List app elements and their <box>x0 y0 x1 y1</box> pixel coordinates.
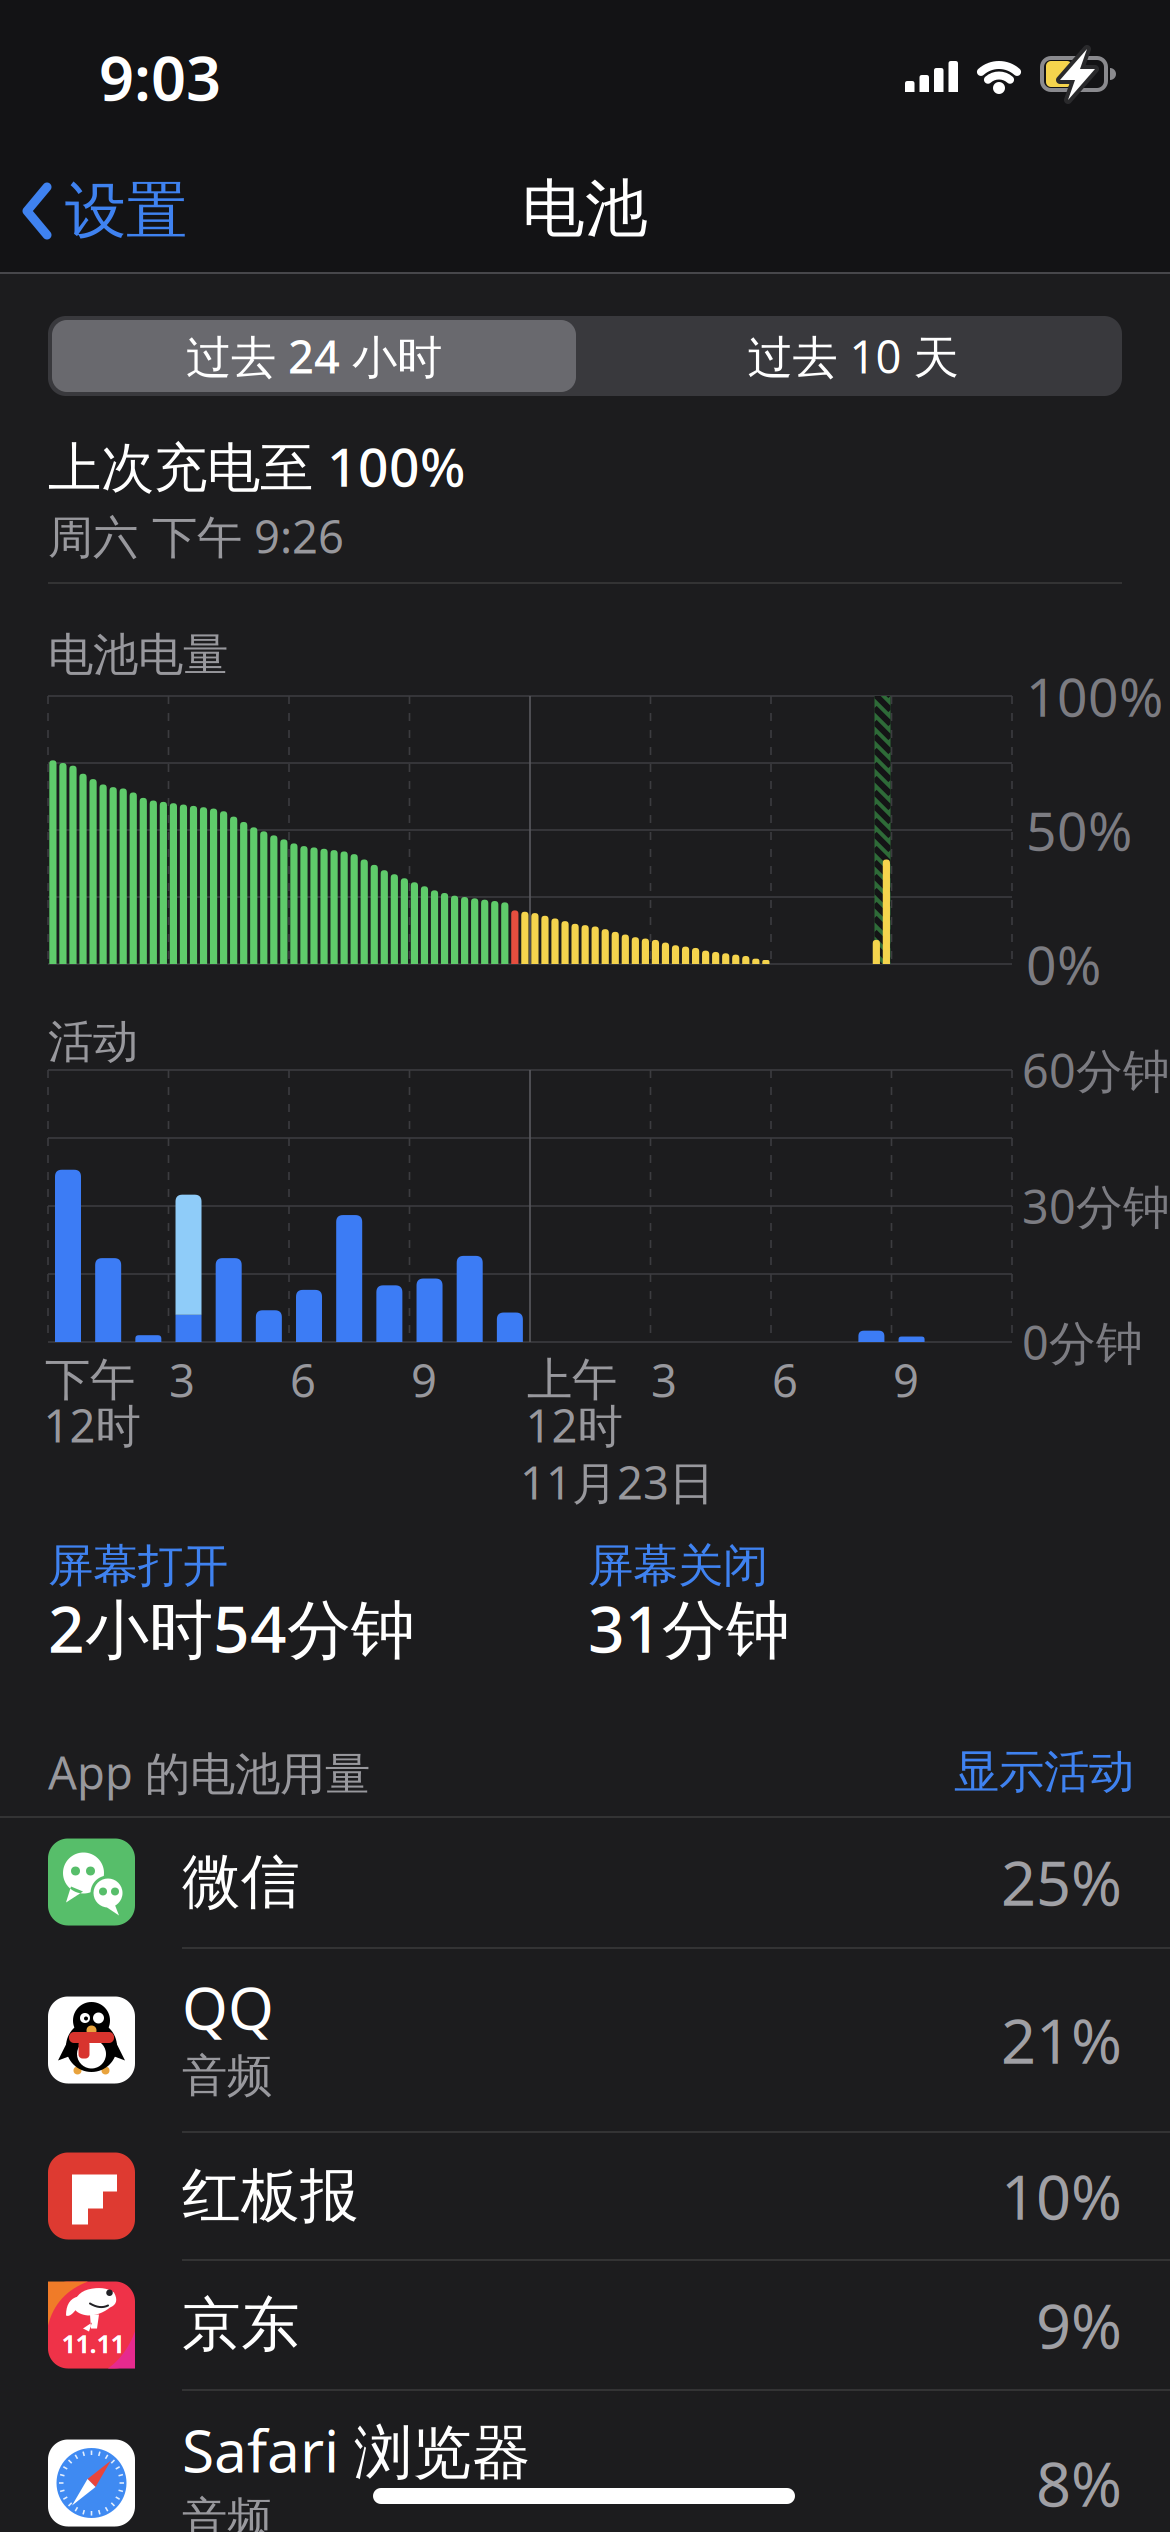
staticText: 上午 <box>527 1352 617 1408</box>
staticText: 3 <box>169 1350 195 1410</box>
staticText: 电池 <box>522 170 648 247</box>
staticText: 0% <box>1026 929 1101 999</box>
staticText: 音频 <box>182 2048 272 2104</box>
staticText: 11.11 <box>61 2327 124 2360</box>
staticText: 6 <box>290 1350 316 1410</box>
staticText: 过去 24 小时 <box>186 326 442 386</box>
staticText: 3 <box>651 1350 677 1410</box>
staticText: 100% <box>1026 661 1163 731</box>
staticText: 微信 <box>182 1846 300 1918</box>
staticText: App 的电池用量 <box>48 1742 370 1802</box>
staticText: 下午 <box>45 1352 135 1408</box>
button[interactable]: 微信 <box>0 1818 1170 1946</box>
button[interactable]: QQ <box>0 1948 1170 2132</box>
staticText: 60分钟 <box>1022 1039 1170 1101</box>
staticText: 显示活动 <box>954 1744 1134 1800</box>
staticText: 设置 <box>65 173 187 249</box>
staticText: 12时 <box>525 1395 622 1455</box>
staticText: 9% <box>1036 2284 1122 2366</box>
button[interactable]: 11.11 <box>0 2261 1170 2389</box>
staticText: 0分钟 <box>1022 1311 1143 1373</box>
staticText: 屏幕打开 <box>48 1538 228 1594</box>
staticText: 50% <box>1026 795 1132 865</box>
staticText: 9:03 <box>99 36 221 118</box>
staticText: 电池电量 <box>48 627 228 683</box>
staticText: 10% <box>1001 2155 1122 2237</box>
staticText: 过去 10 天 <box>747 326 958 386</box>
staticText: 上次充电至 100% <box>48 431 465 501</box>
button[interactable]: 显示活动 <box>954 1744 1134 1800</box>
button[interactable]: 红板报 <box>0 2132 1170 2260</box>
staticText: 周六 下午 9:26 <box>48 506 344 566</box>
button[interactable]: 返回设置 <box>23 173 187 249</box>
staticText: 活动 <box>48 1014 138 1070</box>
staticText: Safari 浏览器 <box>182 2411 531 2489</box>
staticText: 21% <box>1001 1999 1122 2081</box>
staticText: 12时 <box>43 1395 140 1455</box>
staticText: 音频 <box>182 2491 272 2532</box>
staticText: 30分钟 <box>1022 1175 1170 1237</box>
button[interactable]: 过去 10 天 <box>591 320 1115 392</box>
staticText: 6 <box>772 1350 798 1410</box>
staticText: 8% <box>1036 2442 1122 2524</box>
staticText: QQ <box>182 1968 274 2046</box>
button[interactable]: 过去 24 小时 <box>52 320 576 392</box>
staticText: 31分钟 <box>588 1585 790 1670</box>
staticText: 9 <box>893 1350 919 1410</box>
button[interactable]: Safari 浏览器 <box>0 2388 1170 2532</box>
staticText: 红板报 <box>182 2160 359 2232</box>
staticText: 9 <box>411 1350 437 1410</box>
staticText: 25% <box>1001 1841 1122 1923</box>
staticText: 11月23日 <box>520 1452 714 1512</box>
staticText: 京东 <box>182 2289 300 2361</box>
staticText: 2小时54分钟 <box>48 1585 415 1670</box>
staticText: 屏幕关闭 <box>588 1538 768 1594</box>
